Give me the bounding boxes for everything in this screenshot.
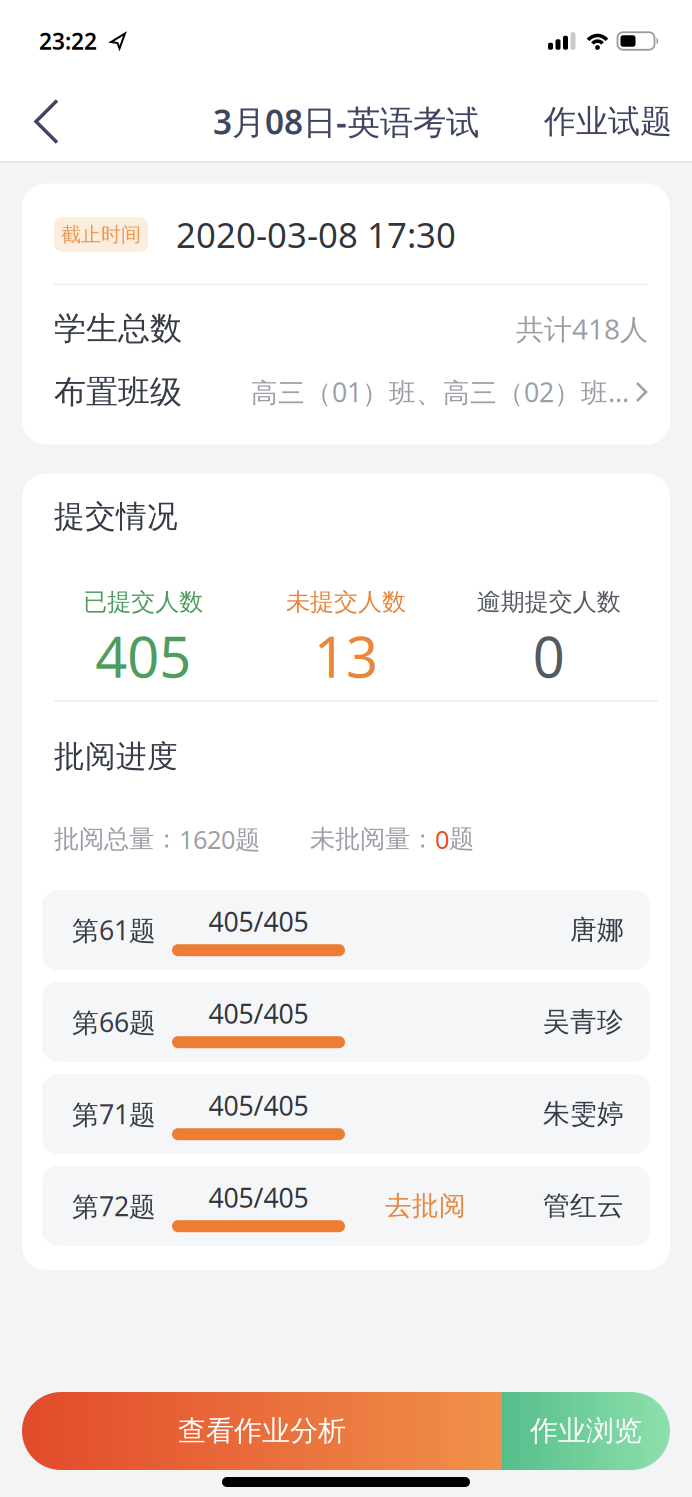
- button[interactable]: 作业试题: [544, 102, 692, 141]
- staticText: 逾期提交人数: [477, 587, 621, 617]
- staticText: 批阅进度: [54, 738, 178, 775]
- button[interactable]: 查看作业分析: [22, 1392, 502, 1470]
- staticText: 布置班级: [54, 372, 182, 412]
- staticText: 23:22: [39, 26, 97, 56]
- staticText: 作业试题: [544, 102, 672, 141]
- staticText: 作业浏览: [530, 1414, 642, 1448]
- button[interactable]: 第66题: [42, 982, 650, 1062]
- staticText: 第61题: [72, 912, 156, 948]
- staticText: 13: [314, 619, 378, 693]
- staticText: 第66题: [72, 1004, 156, 1040]
- button[interactable]: 第72题: [42, 1166, 650, 1246]
- staticText: 截止时间: [61, 222, 141, 247]
- staticText: 3月08日-英语考试: [213, 99, 479, 144]
- staticText: 查看作业分析: [178, 1414, 346, 1448]
- button[interactable]: 布置班级: [54, 372, 648, 412]
- staticText: 提交情况: [54, 498, 178, 535]
- staticText: 0: [435, 822, 449, 856]
- button[interactable]: 作业浏览: [502, 1392, 670, 1470]
- staticText: 405: [95, 619, 191, 693]
- staticText: 第72题: [72, 1188, 156, 1224]
- button[interactable]: 去批阅: [345, 1190, 466, 1222]
- staticText: 405/405: [208, 1088, 308, 1123]
- button[interactable]: 第71题: [42, 1074, 650, 1154]
- button[interactable]: [0, 98, 80, 144]
- staticText: 405/405: [208, 996, 308, 1031]
- staticText: 405/405: [208, 1180, 308, 1215]
- staticText: 未提交人数: [286, 587, 406, 617]
- staticText: 高三（01）班、高三（02）班...: [251, 374, 629, 410]
- staticText: 未批阅量：: [310, 824, 435, 855]
- staticText: 第71题: [72, 1096, 156, 1132]
- staticText: 已提交人数: [83, 587, 203, 617]
- staticText: 共计418人: [516, 310, 648, 347]
- staticText: 405/405: [208, 904, 308, 939]
- staticText: 管红云: [543, 1190, 624, 1222]
- staticText: 学生总数: [54, 309, 182, 348]
- staticText: 批阅总量：: [54, 824, 179, 855]
- staticText: 去批阅: [385, 1190, 466, 1222]
- staticText: 朱雯婷: [543, 1098, 624, 1130]
- staticText: 唐娜: [570, 914, 624, 946]
- button[interactable]: 第61题: [42, 890, 650, 970]
- staticText: 2020-03-08 17:30: [176, 211, 456, 257]
- staticText: 吴青珍: [543, 1006, 624, 1038]
- staticText: 0: [533, 619, 565, 693]
- staticText: 题: [449, 824, 474, 855]
- staticText: 1620题: [179, 822, 260, 856]
